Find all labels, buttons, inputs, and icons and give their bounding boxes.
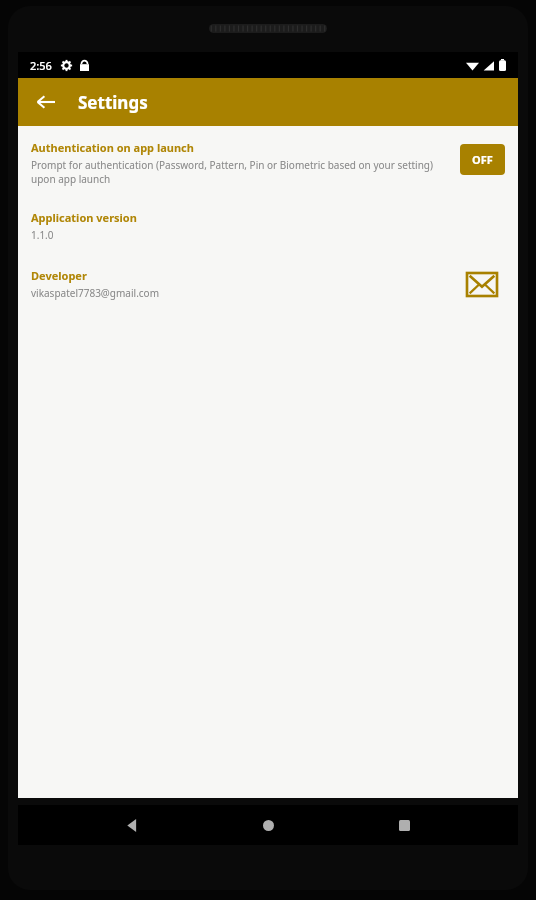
staticText: Prompt for authentication (Password, Pat…	[31, 158, 450, 186]
staticText: Developer	[31, 268, 87, 283]
button[interactable]: Back	[110, 805, 154, 845]
button[interactable]: Email developer	[462, 264, 502, 304]
button[interactable]: Back	[24, 80, 68, 124]
staticText: Authentication on app launch	[31, 140, 194, 155]
staticText: vikaspatel7783@gmail.com	[31, 286, 160, 300]
button[interactable]: OFF	[460, 144, 505, 175]
staticText: OFF	[472, 152, 493, 167]
staticText: Settings	[78, 91, 148, 114]
button[interactable]: Application version	[18, 208, 518, 244]
staticText: 2:56	[30, 58, 52, 73]
button[interactable]: Authentication on app launch	[18, 136, 518, 190]
button[interactable]: Developer	[18, 264, 518, 304]
staticText: 1.1.0	[31, 228, 54, 242]
button[interactable]: Home	[246, 805, 290, 845]
button[interactable]: Recents	[382, 805, 426, 845]
staticText: Application version	[31, 210, 137, 225]
